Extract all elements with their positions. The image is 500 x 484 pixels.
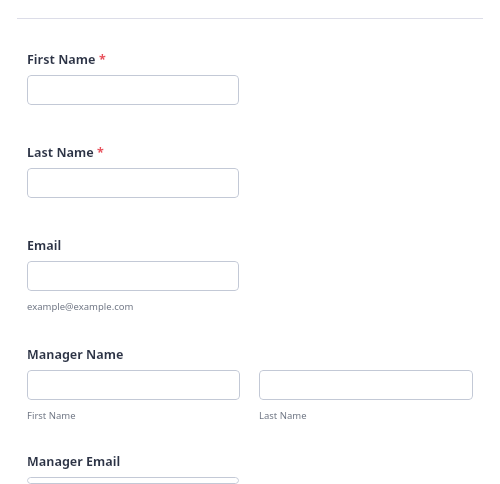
staticText: Email bbox=[27, 237, 62, 254]
button[interactable]: Manager Email bbox=[27, 477, 239, 484]
staticText: * bbox=[97, 144, 104, 161]
button[interactable]: Manager last name bbox=[259, 370, 473, 400]
staticText: First Name bbox=[27, 51, 96, 68]
button[interactable]: Email bbox=[27, 261, 239, 291]
staticText: Last Name bbox=[27, 144, 94, 161]
staticText: Manager Name bbox=[27, 346, 124, 363]
staticText: example@example.com bbox=[27, 300, 134, 313]
staticText: Last Name bbox=[259, 409, 307, 422]
button[interactable]: Manager first name bbox=[27, 370, 240, 400]
staticText: Manager Email bbox=[27, 453, 121, 470]
staticText: First Name bbox=[27, 409, 76, 422]
button[interactable]: Last Name bbox=[27, 168, 239, 198]
staticText: * bbox=[99, 51, 106, 68]
button[interactable]: First Name bbox=[27, 75, 239, 105]
